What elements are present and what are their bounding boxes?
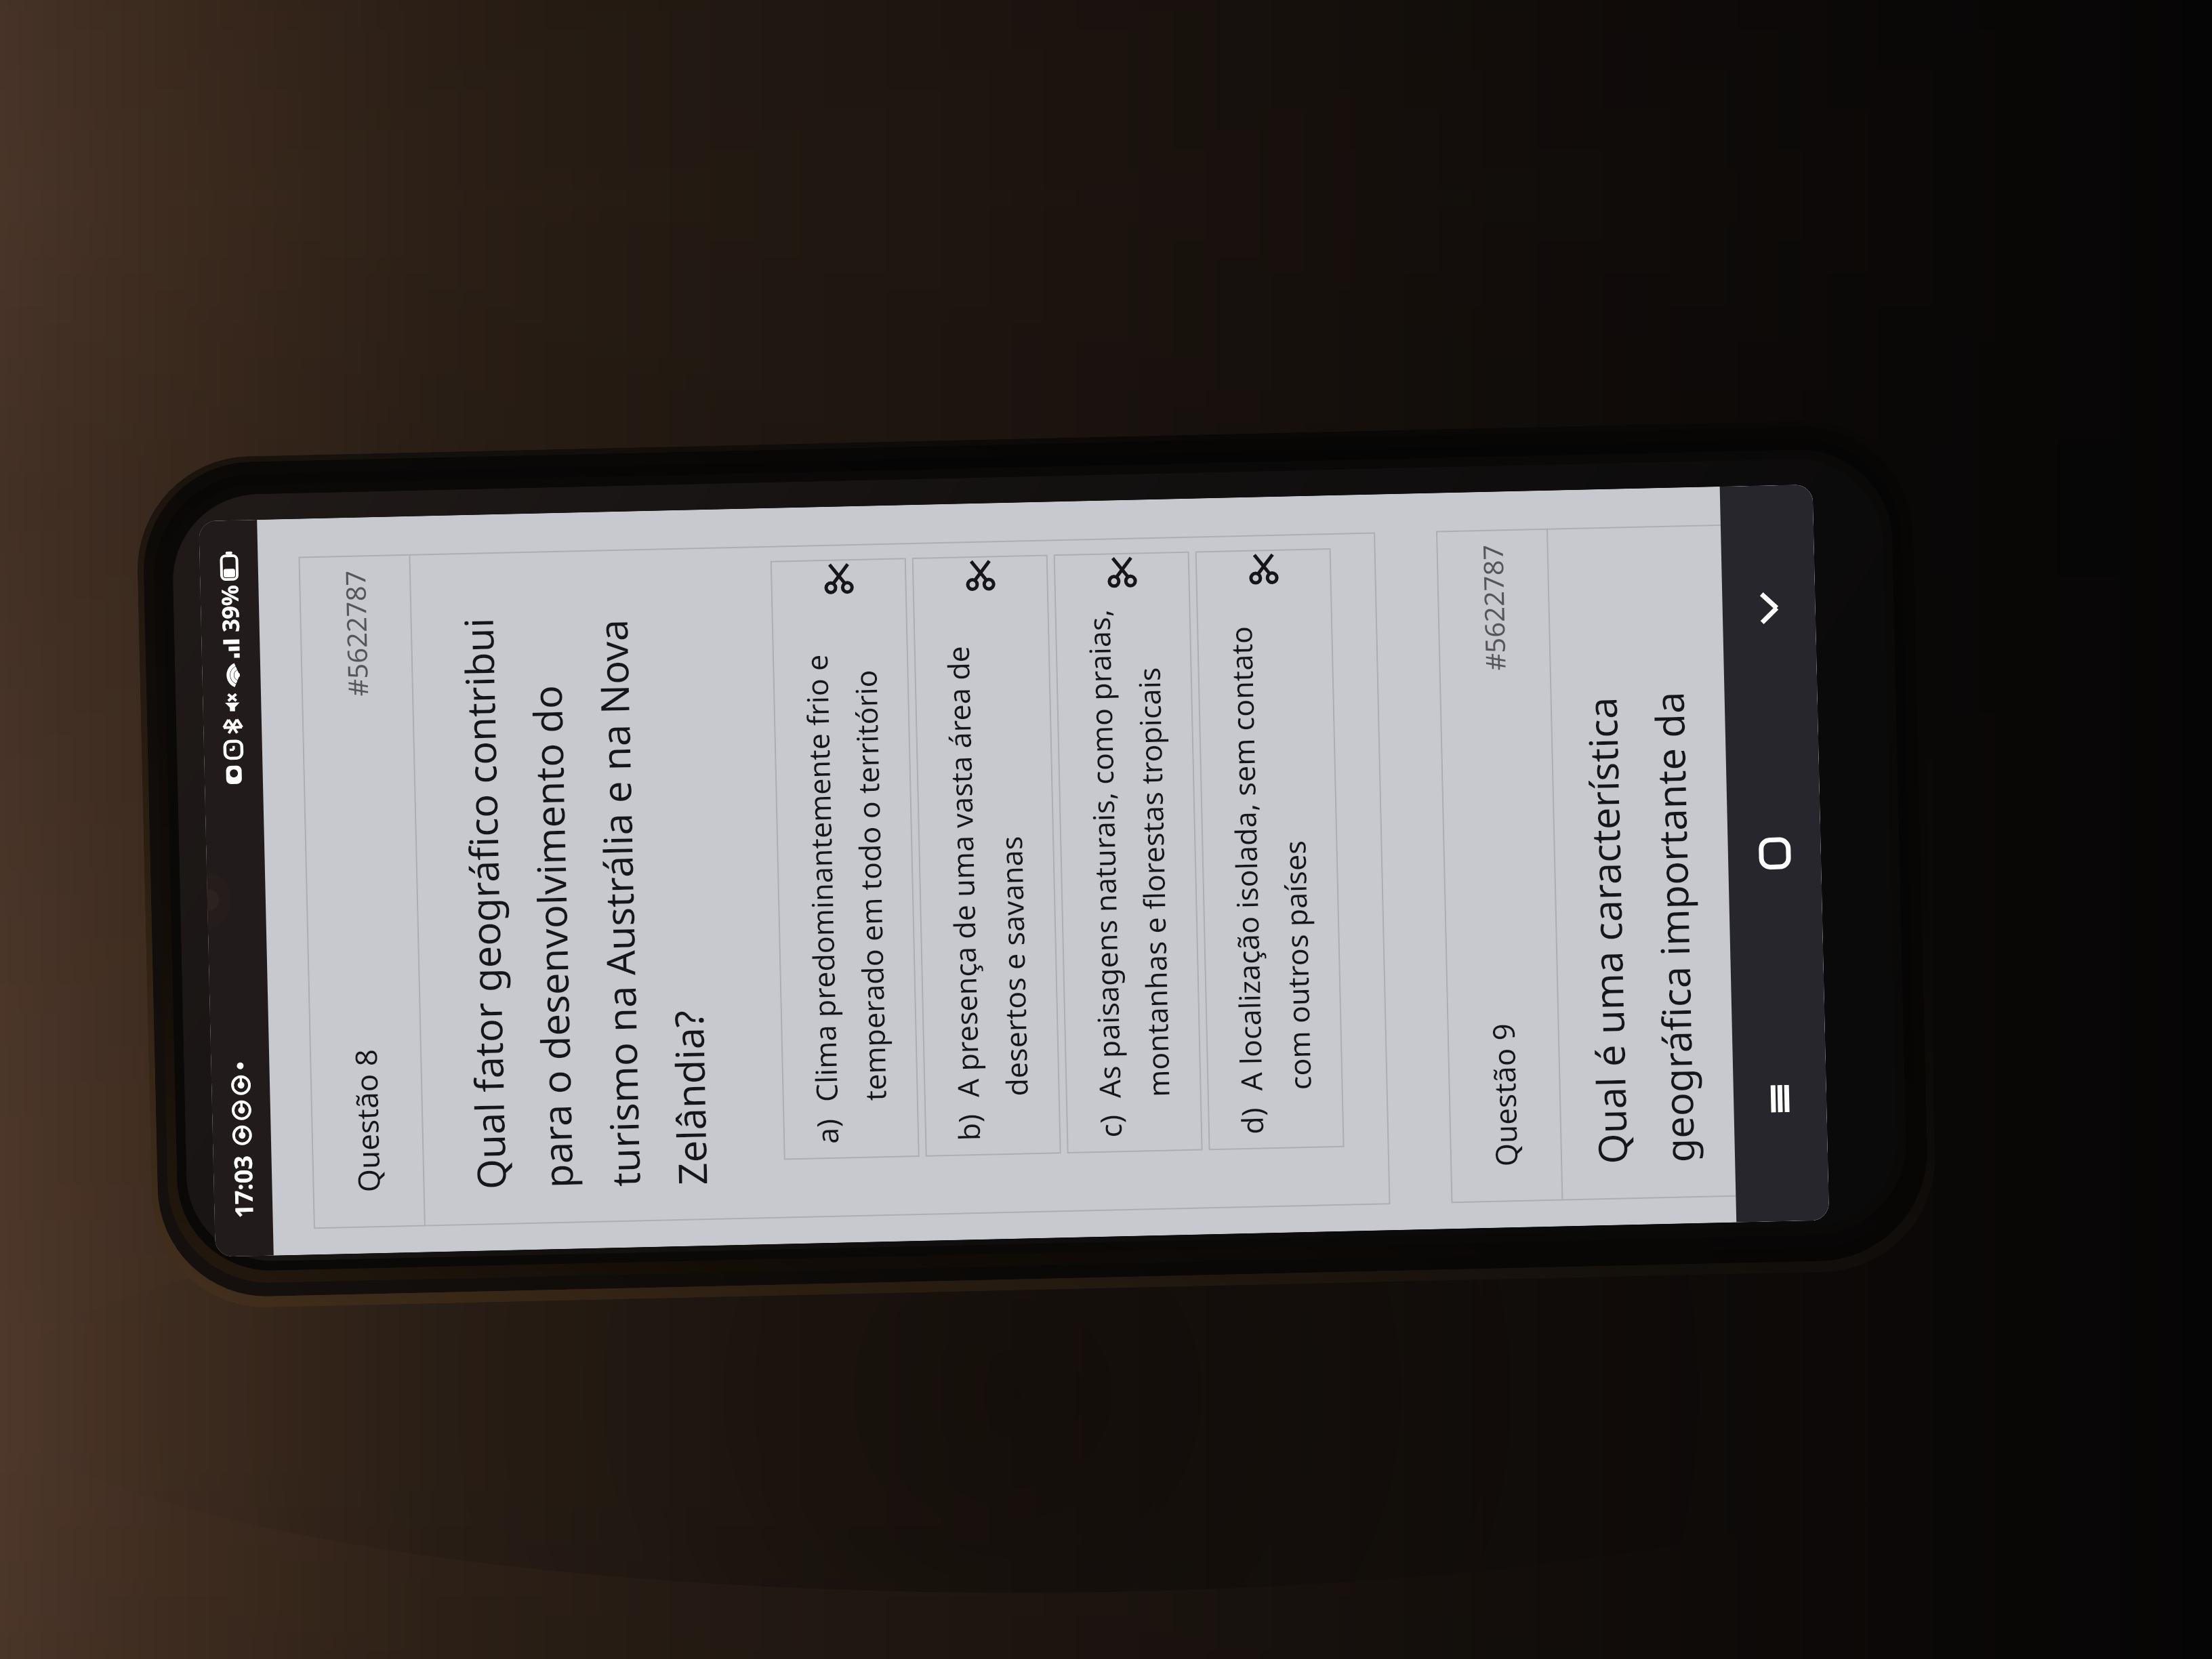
button[interactable]: d): [1195, 548, 1344, 1150]
button[interactable]: Recents: [1731, 975, 1829, 1222]
button[interactable]: Home: [1725, 730, 1824, 977]
staticText: #5622787: [1474, 544, 1513, 671]
staticText: A localização isolada, sem contato com o…: [1220, 587, 1319, 1091]
button[interactable]: a): [770, 558, 919, 1160]
button[interactable]: Questão 8: [298, 532, 1390, 1229]
staticText: c): [1090, 1114, 1131, 1138]
button[interactable]: Back: [1720, 484, 1818, 732]
staticText: a): [807, 1118, 847, 1144]
button[interactable]: c): [1054, 552, 1203, 1154]
staticText: 17:03: [226, 1155, 261, 1219]
staticText: As paisagens naturais, como praias, mont…: [1078, 591, 1178, 1099]
staticText: Qual é uma característica geográfica imp…: [1571, 549, 1720, 1165]
staticText: 39%: [214, 584, 246, 633]
staticText: Questão 8: [345, 1048, 389, 1193]
staticText: #5622787: [336, 570, 376, 697]
staticText: A presença de uma vasta área de desertos…: [937, 594, 1036, 1098]
staticText: d): [1232, 1107, 1272, 1135]
button[interactable]: Questão 9: [1436, 524, 1765, 1203]
staticText: Qual fator geográfico contribui para o d…: [450, 572, 732, 1190]
staticText: Questão 9: [1482, 1023, 1526, 1167]
staticText: Clima predominantemente frio e temperado…: [795, 597, 894, 1102]
staticText: b): [948, 1113, 989, 1141]
button[interactable]: b): [912, 555, 1061, 1157]
